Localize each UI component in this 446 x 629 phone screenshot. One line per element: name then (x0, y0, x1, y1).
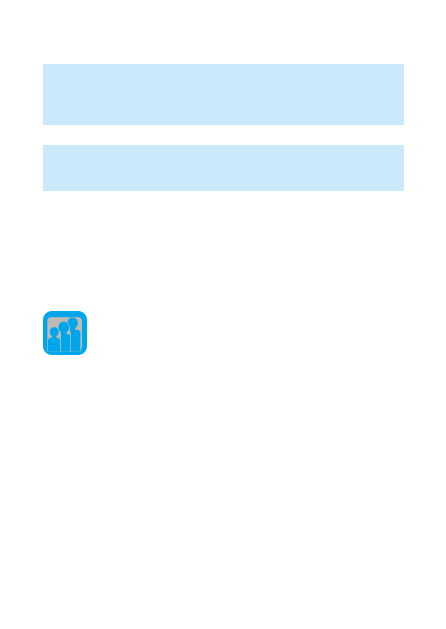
button[interactable]: Groups (43, 311, 87, 355)
